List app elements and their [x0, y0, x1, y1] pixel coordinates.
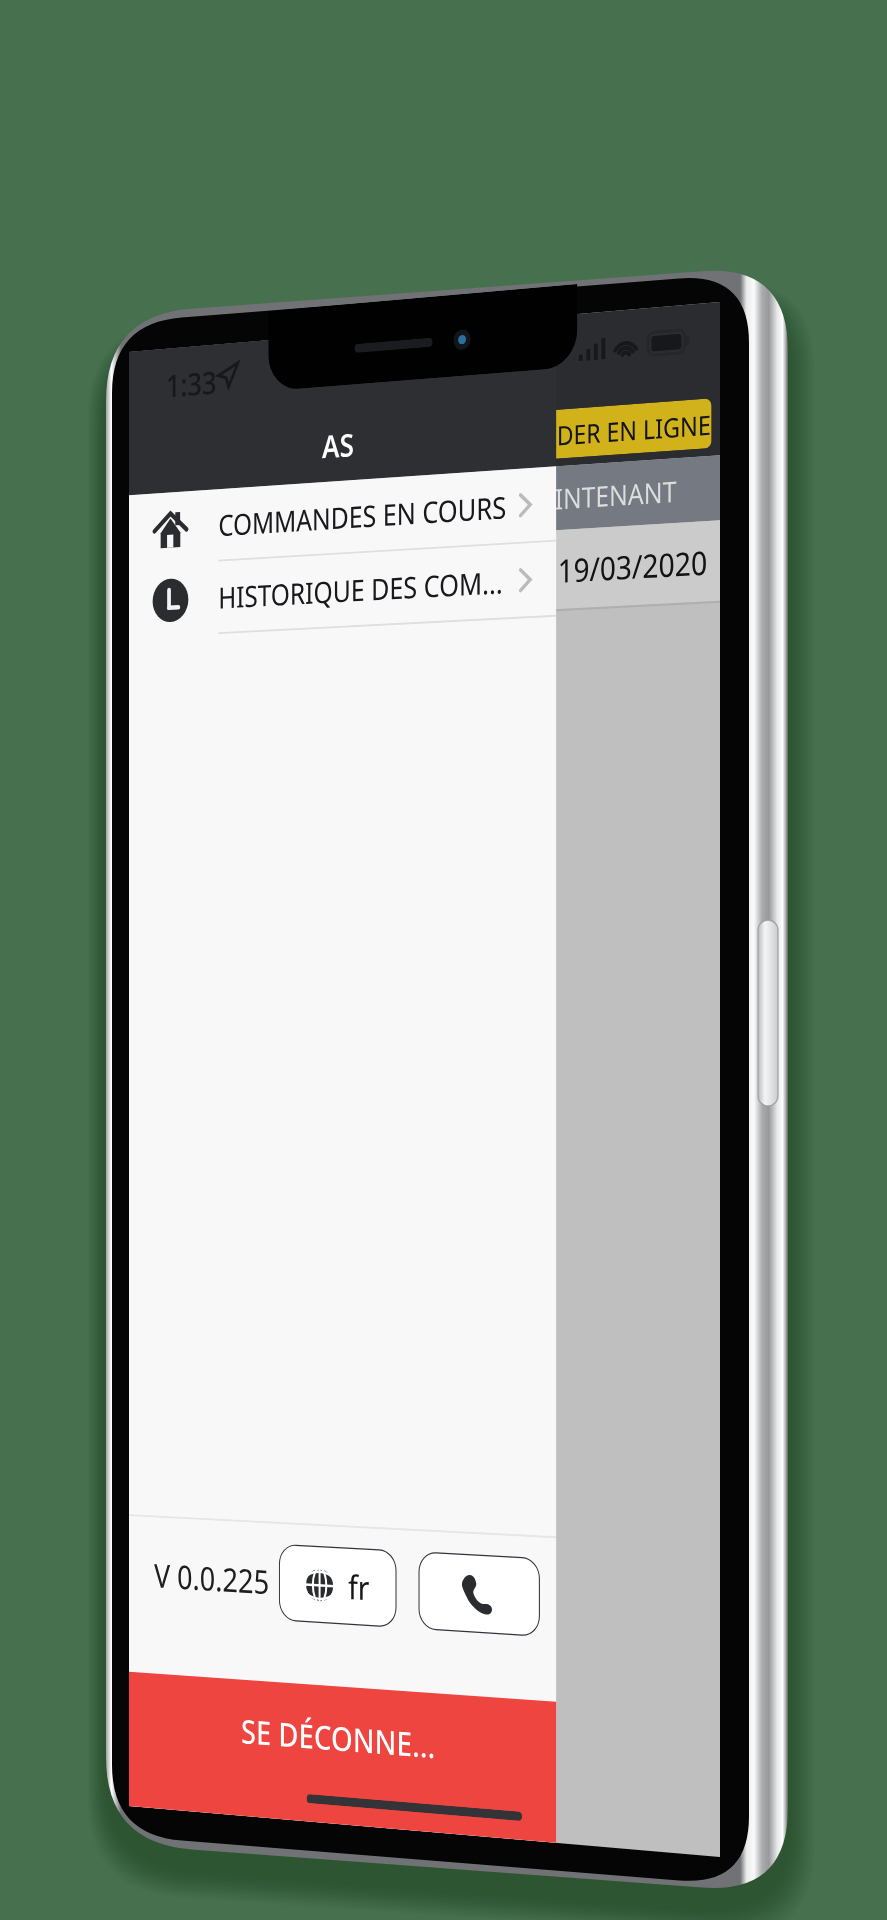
- button[interactable]: fr: [100, 661, 176, 703]
- staticText: SE DÉCONNE...: [75, 753, 201, 778]
- button[interactable]: SE DÉCONNE...: [0, 737, 276, 812]
